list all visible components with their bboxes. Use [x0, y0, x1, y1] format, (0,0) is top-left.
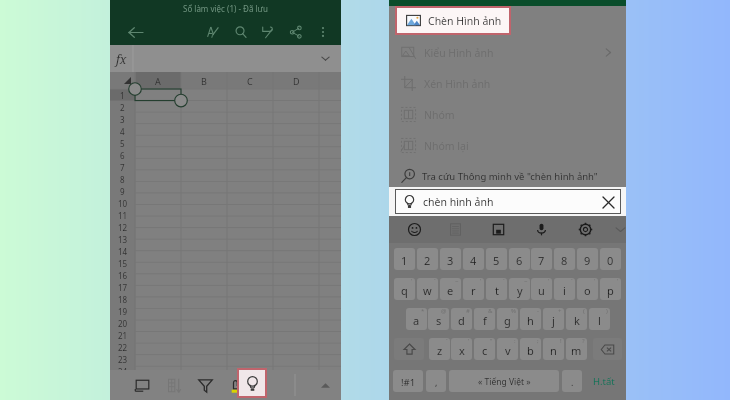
button[interactable]: .: [562, 370, 582, 392]
button[interactable]: Filter: [190, 370, 220, 400]
button[interactable]: Undo: [256, 20, 280, 44]
button[interactable]: 7: [531, 248, 552, 270]
staticText: 22: [118, 342, 128, 353]
button[interactable]: Chèn Hình ảnh: [395, 6, 511, 35]
staticText: ': [594, 278, 596, 285]
staticText: 5: [493, 253, 500, 268]
button[interactable]: Voice input: [529, 217, 553, 241]
button[interactable]: Emoji: [402, 217, 426, 241]
button[interactable]: Backspace: [593, 338, 622, 360]
button[interactable]: 1: [394, 248, 415, 270]
button[interactable]: h: [520, 308, 541, 330]
button[interactable]: ,: [426, 370, 446, 392]
staticText: ~: [455, 278, 459, 285]
staticText: 1: [120, 90, 125, 101]
button[interactable]: y: [509, 278, 530, 300]
staticText: Nhóm: [424, 108, 455, 122]
button[interactable]: Back: [123, 20, 147, 44]
staticText: l: [598, 313, 601, 328]
staticText: b: [527, 343, 534, 358]
button[interactable]: Fill colour: [221, 370, 251, 400]
button[interactable]: b: [520, 338, 541, 360]
button[interactable]: Expand toolbar: [315, 370, 335, 400]
button[interactable]: p: [600, 278, 621, 300]
button[interactable]: H.tất: [585, 370, 623, 392]
staticText: a: [413, 313, 420, 328]
button[interactable]: 4: [463, 248, 484, 270]
button[interactable]: Keyboard settings: [573, 217, 597, 241]
button[interactable]: u: [531, 278, 552, 300]
button[interactable]: n: [543, 338, 564, 360]
button[interactable]: Clear: [599, 193, 617, 211]
button[interactable]: g: [497, 308, 518, 330]
staticText: A: [155, 75, 161, 87]
staticText: 2: [120, 102, 125, 113]
staticText: q: [401, 283, 408, 298]
staticText: #: [466, 308, 470, 315]
button[interactable]: w: [417, 278, 438, 300]
button[interactable]: Search: [229, 20, 253, 44]
button[interactable]: s: [428, 308, 449, 330]
button[interactable]: i: [554, 278, 575, 300]
staticText: ): [606, 308, 608, 315]
button[interactable]: d: [451, 308, 472, 330]
button[interactable]: a: [406, 308, 427, 330]
button[interactable]: Clipboard: [443, 217, 467, 241]
button[interactable]: m: [566, 338, 587, 360]
staticText: ': [468, 338, 470, 345]
button[interactable]: q: [394, 278, 415, 300]
button[interactable]: e: [440, 278, 461, 300]
staticText: s: [436, 313, 442, 328]
staticText: :: [514, 338, 516, 345]
staticText: o: [584, 283, 591, 298]
button[interactable]: Share: [284, 20, 308, 44]
staticText: 6: [516, 253, 523, 268]
staticText: !: [560, 338, 562, 345]
button[interactable]: Sticker: [486, 217, 510, 241]
staticText: c: [482, 343, 488, 358]
button[interactable]: o: [577, 278, 598, 300]
button[interactable]: x: [451, 338, 472, 360]
button[interactable]: « Tiếng Việt »: [449, 370, 559, 392]
button[interactable]: Text style: [201, 20, 225, 44]
button[interactable]: Tell me what you want to do: [237, 368, 267, 398]
staticText: i: [563, 283, 566, 298]
button[interactable]: Collapse keyboard: [609, 218, 631, 240]
button[interactable]: Tra cứu Thông minh về "chèn hình ảnh": [389, 161, 626, 191]
button[interactable]: 0: [600, 248, 621, 270]
button[interactable]: r: [463, 278, 484, 300]
button[interactable]: t: [486, 278, 507, 300]
button[interactable]: 3: [440, 248, 461, 270]
button[interactable]: chèn hình ảnh: [395, 189, 621, 214]
button[interactable]: !#1: [393, 370, 423, 392]
button[interactable]: z: [429, 338, 450, 360]
button[interactable]: 6: [509, 248, 530, 270]
staticText: `: [434, 278, 436, 285]
staticText: `: [446, 338, 448, 345]
button[interactable]: l: [589, 308, 610, 330]
staticText: m: [571, 343, 582, 358]
button[interactable]: Layout: [127, 370, 157, 400]
button[interactable]: c: [474, 338, 495, 360]
staticText: *: [421, 308, 425, 315]
staticText: 18: [118, 294, 128, 305]
staticText: ,: [435, 376, 438, 388]
button[interactable]: 9: [577, 248, 598, 270]
staticText: g: [504, 313, 511, 328]
button[interactable]: 5: [486, 248, 507, 270]
button[interactable]: 2: [417, 248, 438, 270]
button[interactable]: Shift: [394, 338, 424, 360]
button[interactable]: More options: [311, 20, 335, 44]
button[interactable]: f: [474, 308, 495, 330]
button[interactable]: j: [543, 308, 564, 330]
button[interactable]: 8: [554, 248, 575, 270]
button[interactable]: k: [566, 308, 587, 330]
button[interactable]: v: [497, 338, 518, 360]
staticText: 24: [118, 366, 128, 377]
